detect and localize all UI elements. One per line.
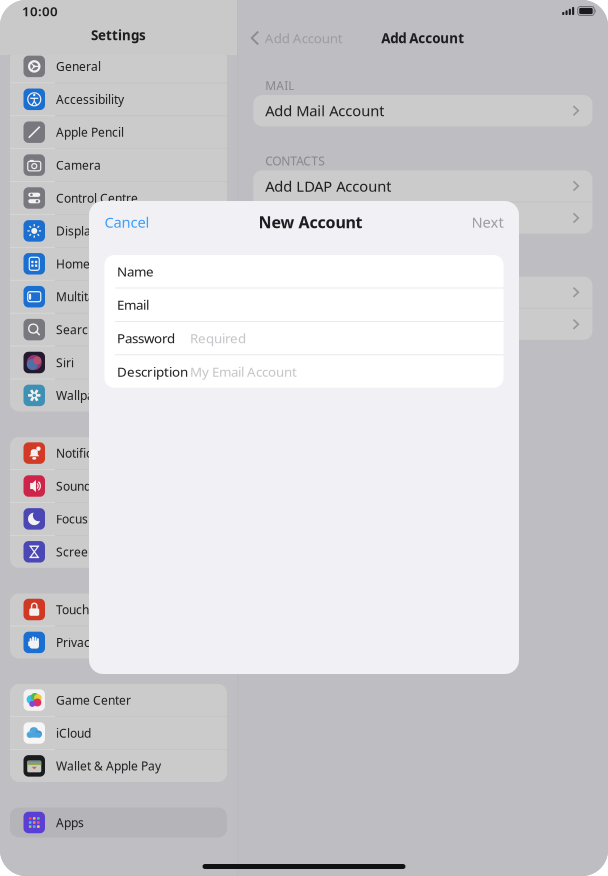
button[interactable]: Control Centre (10, 182, 227, 214)
button[interactable]: Cancel (104, 206, 149, 238)
staticText: Home Screen & App Library (56, 256, 211, 272)
button[interactable]: Add LDAP Account (253, 170, 592, 202)
button[interactable]: Apps (10, 807, 227, 837)
button[interactable]: Home Screen & App Library (10, 248, 227, 280)
button[interactable]: Display & Brightness (10, 215, 227, 247)
staticText: CONTACTS (265, 153, 325, 169)
staticText: New Account (258, 211, 362, 233)
button[interactable]: Accessibility (10, 83, 227, 115)
staticText: Notifications (56, 445, 126, 461)
staticText: Privacy & Security (56, 634, 156, 650)
staticText: 10:00 (22, 2, 58, 20)
button[interactable]: Notifications (10, 437, 227, 469)
staticText: Next (471, 212, 503, 232)
staticText: Focus (56, 511, 88, 527)
staticText: Apps (56, 814, 84, 830)
staticText: Display & Brightness (56, 223, 172, 239)
button[interactable]: Next (471, 206, 503, 238)
button[interactable]: Focus (10, 503, 227, 535)
button[interactable]: Camera (10, 149, 227, 181)
staticText: Description (117, 363, 188, 380)
button[interactable]: iCloud (10, 717, 227, 749)
button[interactable]: Add CalDAV Account (253, 309, 592, 340)
staticText: MAIL (265, 77, 294, 93)
button[interactable]: Wallet & Apple Pay (10, 750, 227, 782)
staticText: General (56, 58, 101, 74)
staticText: Settings (91, 26, 146, 44)
staticText: Wallet & Apple Pay (56, 758, 161, 774)
staticText: Add CalDAV Account (265, 314, 404, 334)
staticText: Email (117, 296, 149, 313)
staticText: Add Account (381, 29, 464, 47)
button[interactable]: Screen Time (10, 536, 227, 568)
staticText: Name (117, 262, 154, 280)
button[interactable]: Wallpaper (10, 379, 227, 411)
button[interactable]: Add Mail Account (253, 95, 592, 126)
button[interactable]: Search (10, 313, 227, 346)
staticText: Sounds (56, 478, 97, 494)
button[interactable]: Game Center (10, 684, 227, 716)
button[interactable]: Add Subscribed Calendar (253, 277, 592, 308)
staticText: Game Center (56, 692, 131, 708)
staticText: Password (117, 329, 175, 347)
staticText: Screen Time (56, 544, 126, 560)
button[interactable]: General (10, 50, 227, 82)
staticText: Required (190, 329, 246, 347)
button[interactable]: Sounds (10, 470, 227, 502)
button[interactable]: Privacy & Security (10, 626, 227, 658)
staticText: Multitasking & Gestures (56, 289, 190, 305)
button[interactable]: Touch ID & Passcode (10, 593, 227, 626)
button[interactable]: Siri (10, 346, 227, 379)
staticText: Apple Pencil (56, 124, 124, 140)
staticText: My Email Account (190, 363, 297, 380)
button[interactable]: Multitasking & Gestures (10, 281, 227, 313)
staticText: Touch ID & Passcode (56, 601, 173, 617)
staticText: Add LDAP Account (265, 176, 391, 196)
staticText: Add Mail Account (265, 101, 384, 120)
button[interactable]: Apple Pencil (10, 116, 227, 148)
staticText: iCloud (56, 725, 91, 741)
staticText: Accessibility (56, 91, 124, 107)
staticText: Siri (56, 354, 74, 370)
staticText: Wallpaper (56, 387, 113, 403)
staticText: Control Centre (56, 190, 138, 206)
staticText: Add Account (265, 29, 343, 47)
staticText: Add CardDAV Account (265, 208, 415, 228)
button[interactable]: Add CardDAV Account (253, 202, 592, 234)
staticText: Search (56, 322, 95, 337)
button[interactable]: Add Account (238, 23, 343, 53)
staticText: Cancel (104, 212, 149, 232)
staticText: Add Subscribed Calendar (265, 282, 437, 302)
staticText: Camera (56, 157, 101, 173)
